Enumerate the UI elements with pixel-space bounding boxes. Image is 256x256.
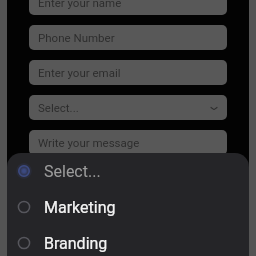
staticText: Enter your name bbox=[38, 0, 122, 9]
staticText: Phone Number bbox=[38, 31, 115, 44]
button[interactable]: Select... bbox=[29, 95, 227, 120]
staticText: Select... bbox=[38, 101, 79, 114]
staticText: Select... bbox=[44, 162, 101, 181]
button[interactable]: Marketing bbox=[7, 189, 249, 225]
staticText: Write your message bbox=[38, 136, 140, 149]
button[interactable]: Phone Number bbox=[29, 25, 227, 50]
button[interactable]: Enter your name bbox=[29, 0, 227, 15]
staticText: Marketing bbox=[44, 198, 116, 217]
staticText: Branding bbox=[44, 234, 108, 253]
button[interactable]: Enter your email bbox=[29, 60, 227, 85]
other: Open dropdown bbox=[210, 104, 218, 112]
button[interactable]: Select... bbox=[7, 153, 249, 189]
staticText: Enter your email bbox=[38, 66, 121, 79]
button[interactable]: Write your message bbox=[29, 130, 227, 155]
button[interactable]: Branding bbox=[7, 225, 249, 256]
